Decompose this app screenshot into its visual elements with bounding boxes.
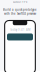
staticText: LOGOTYPE — [13, 0, 27, 4]
staticText: Today 9:41 AM — [10, 28, 30, 31]
staticText: Build a quick prototype — [3, 8, 37, 11]
staticText: with the SwiftUI preview — [4, 12, 36, 15]
